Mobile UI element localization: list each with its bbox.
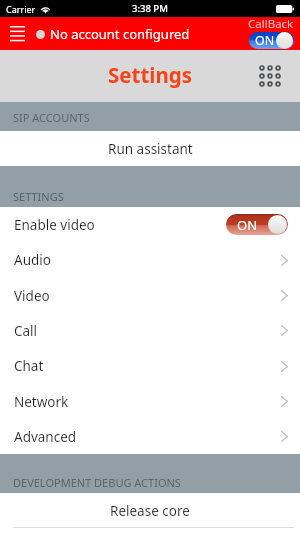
staticText: ON [255,32,275,49]
button[interactable]: Enable video [0,207,300,242]
staticText: Video [14,287,50,305]
staticText: 3:38 PM [132,2,168,15]
button[interactable]: Call [0,313,300,348]
staticText: Advanced [14,428,77,446]
staticText: ON [237,216,258,234]
staticText: Audio [14,251,51,269]
staticText: Run assistant [108,140,193,158]
staticText: SIP ACCOUNTS [13,110,90,125]
button[interactable]: Advanced [0,419,300,454]
staticText: Carrier [6,3,36,15]
staticText: No account configured [50,25,190,43]
staticText: SETTINGS [13,189,64,204]
staticText: Settings [108,61,193,89]
button[interactable]: Release core [0,493,300,528]
staticText: Network [14,393,69,411]
staticText: Call [14,322,38,340]
button[interactable]: Dialpad [253,59,287,93]
button[interactable]: Enable video toggle [226,214,288,235]
button[interactable]: Audio [0,242,300,278]
button[interactable]: Menu [0,17,35,50]
button[interactable]: Chat [0,348,300,384]
button[interactable]: Video [0,278,300,313]
staticText: DEVELOPMENT DEBUG ACTIONS [13,475,181,490]
staticText: Release core [110,502,190,520]
button[interactable]: CallBack toggle [249,32,294,49]
button[interactable]: Network [0,384,300,419]
staticText: Enable video [14,216,95,234]
staticText: Chat [14,357,44,375]
staticText: CallBack [248,16,294,32]
button[interactable]: Run assistant [0,131,300,166]
